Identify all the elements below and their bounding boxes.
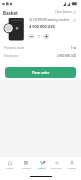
staticText: Catalog: [22, 166, 31, 169]
staticText: Basket: [3, 10, 19, 16]
button[interactable]: Remove item: [71, 17, 78, 24]
staticText: 4 900 000 UZS: [57, 54, 77, 58]
staticText: 4 900 000 UZS: [29, 24, 55, 29]
button[interactable]: Basket: [34, 161, 49, 169]
staticText: Total price: [4, 54, 19, 58]
button[interactable]: Clear basket: [55, 9, 76, 15]
staticText: Favorites: [51, 166, 62, 169]
staticText: Basket: [38, 166, 46, 169]
button[interactable]: Increase quantity: [43, 34, 49, 39]
staticText: Profile: [68, 166, 76, 169]
button[interactable]: Home: [2, 161, 18, 169]
staticText: Place order: [32, 71, 50, 75]
button[interactable]: Decrease quantity: [28, 34, 34, 39]
button[interactable]: Profile: [64, 161, 79, 169]
button[interactable]: Place order: [5, 67, 76, 78]
button[interactable]: Favorites: [49, 161, 64, 169]
staticText: Clear basket: [55, 10, 72, 14]
staticText: LG F2T3HS0W washing machine: [29, 18, 73, 22]
button[interactable]: Catalog: [18, 161, 34, 169]
staticText: Products count: [4, 46, 25, 50]
staticText: Home: [6, 166, 14, 169]
staticText: 1 ta: [71, 46, 77, 50]
staticText: 1: [38, 35, 40, 39]
